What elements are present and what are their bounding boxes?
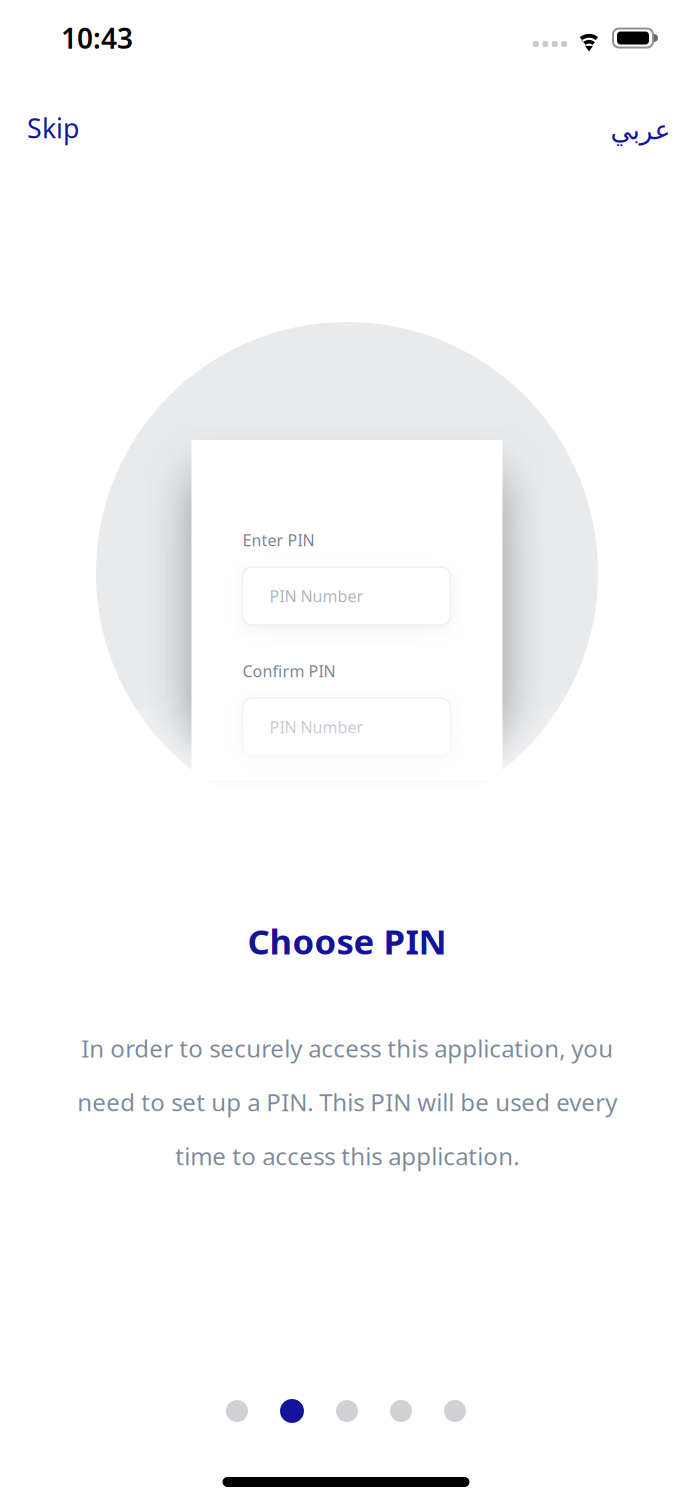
button[interactable]: Page 3 of 5 (336, 1400, 358, 1422)
staticText: In order to securely access this applica… (77, 1032, 617, 1172)
button[interactable]: Page 4 of 5 (390, 1400, 412, 1422)
staticText: PIN Number (269, 716, 363, 738)
button[interactable]: عربي (602, 106, 678, 154)
staticText: Skip (27, 110, 79, 146)
staticText: Choose PIN (247, 918, 446, 964)
staticText: عربي (610, 115, 670, 145)
button[interactable]: Page 2 of 5 (280, 1399, 304, 1423)
button[interactable]: Skip (19, 101, 87, 155)
button[interactable]: Page 1 of 5 (226, 1400, 248, 1422)
staticText: 10:43 (61, 19, 133, 57)
staticText: PIN Number (269, 585, 363, 607)
staticText: Confirm PIN (242, 660, 335, 682)
staticText: Enter PIN (242, 529, 314, 551)
button[interactable]: Page 5 of 5 (444, 1400, 466, 1422)
